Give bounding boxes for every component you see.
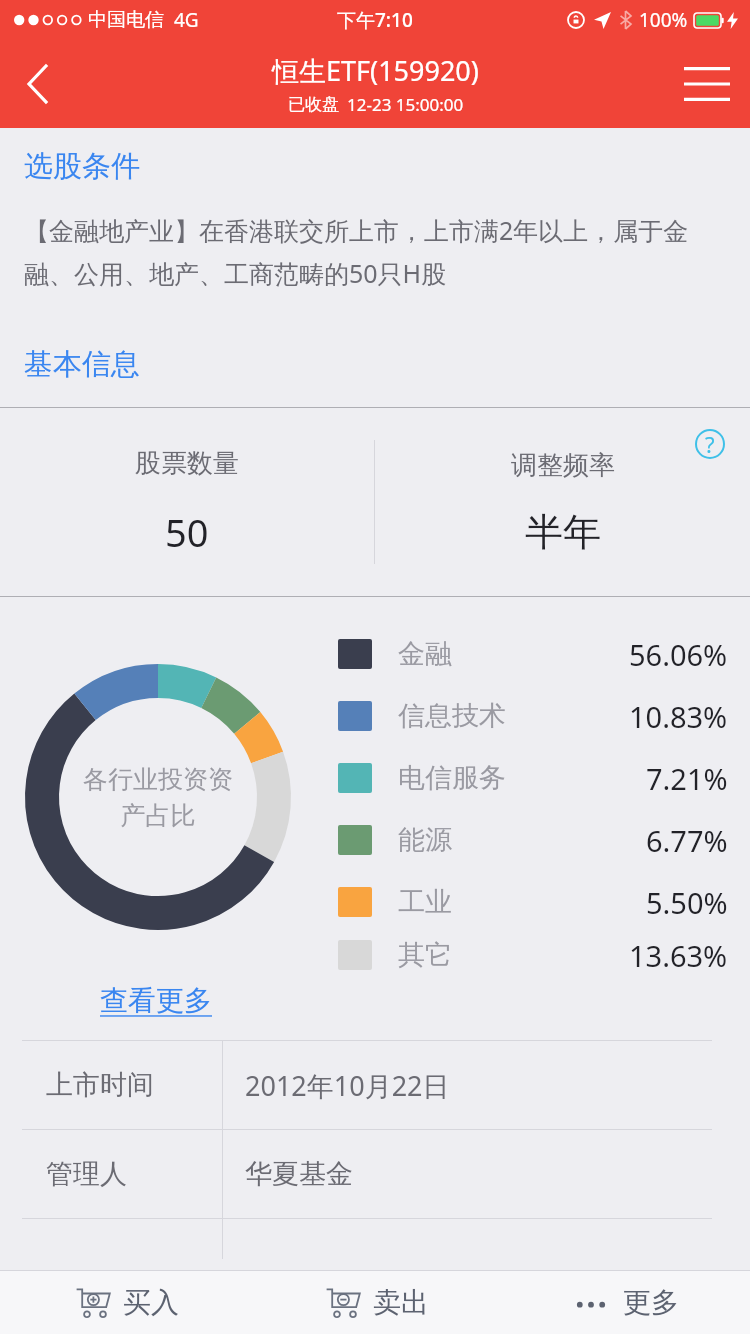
button[interactable]: 查看更多 — [100, 979, 212, 1022]
staticText: 【金融地产业】在香港联交所上市，上市满2年以上，属于金融、公用、地产、工商范畴的… — [24, 213, 728, 290]
staticText: 更多 — [623, 1285, 679, 1320]
staticText: ? — [705, 429, 715, 459]
staticText: 查看更多 — [100, 983, 212, 1018]
staticText: 7.21% — [646, 759, 728, 798]
staticText: 基本信息 — [24, 346, 140, 383]
staticText: 半年 — [525, 508, 601, 556]
staticText: 10.83% — [629, 697, 728, 736]
staticText: 华夏基金 — [245, 1157, 353, 1191]
button[interactable]: 卖出 — [250, 1271, 500, 1334]
staticText: 50 — [165, 506, 209, 558]
staticText: 卖出 — [373, 1285, 429, 1320]
staticText: 6.77% — [646, 821, 728, 860]
staticText: 56.06% — [629, 635, 728, 674]
staticText: 上市时间 — [46, 1068, 154, 1102]
staticText: 股票数量 — [135, 447, 239, 480]
staticText: 12-23 15:00:00 — [347, 93, 464, 116]
staticText: 电信服务 — [398, 761, 506, 795]
staticText: 能源 — [398, 823, 452, 857]
staticText: 已收盘 — [288, 94, 339, 115]
staticText: 4G — [174, 7, 199, 33]
staticText: 信息技术 — [398, 699, 506, 733]
staticText: 100% — [639, 7, 688, 33]
staticText: 下午7:10 — [337, 7, 413, 33]
staticText: 恒生ETF(159920) — [272, 52, 479, 89]
staticText: 工业 — [398, 885, 452, 919]
staticText: 调整频率 — [511, 449, 615, 482]
button[interactable]: 买入 — [0, 1271, 250, 1334]
staticText: 13.63% — [629, 936, 728, 975]
button[interactable]: 更多 — [500, 1271, 750, 1334]
staticText: 金融 — [398, 637, 452, 671]
button[interactable]: Menu — [664, 40, 750, 128]
button[interactable]: Help — [692, 426, 728, 462]
button[interactable]: Back — [0, 40, 76, 128]
staticText: 管理人 — [46, 1157, 127, 1191]
staticText: 各行业投资资 产占比 — [83, 764, 233, 831]
staticText: 选股条件 — [24, 148, 140, 185]
staticText: 其它 — [398, 938, 452, 972]
staticText: 买入 — [123, 1285, 179, 1320]
staticText: 2012年10月22日 — [245, 1067, 450, 1104]
button[interactable]: 上市时间 — [22, 1041, 712, 1129]
staticText: 中国电信 — [88, 8, 164, 32]
button[interactable]: 管理人 — [22, 1130, 712, 1218]
staticText: 5.50% — [646, 883, 728, 922]
